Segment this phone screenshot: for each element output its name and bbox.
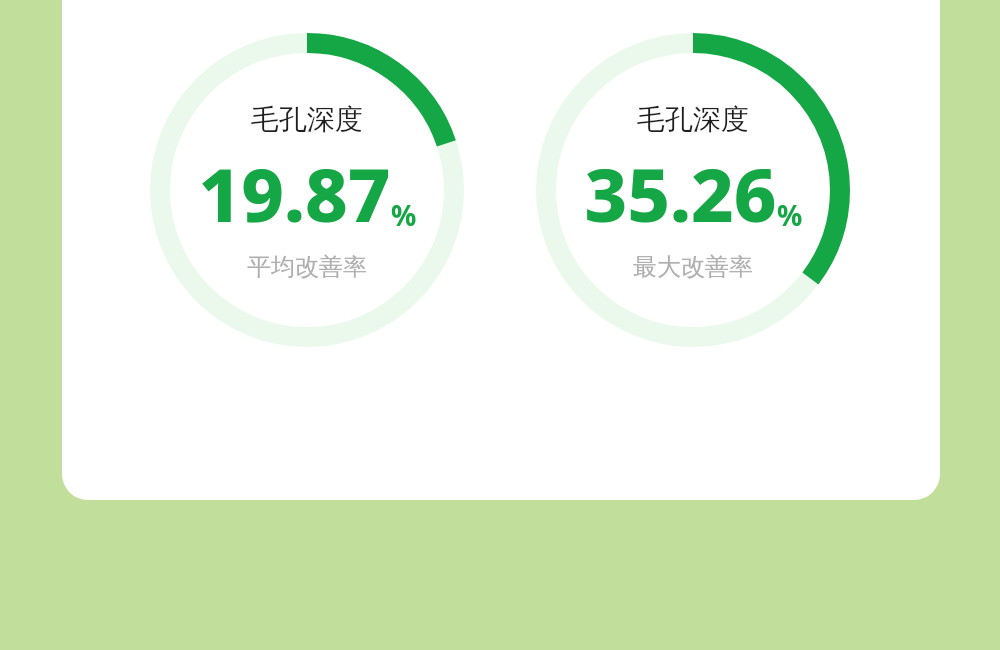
staticText: % [391, 196, 417, 234]
staticText: 35.26 [584, 143, 777, 244]
staticText: 毛孔深度 [251, 102, 363, 137]
button[interactable]: 毛孔深度 最大改善率 35.26% [536, 33, 850, 347]
button[interactable]: 毛孔深度 平均改善率 19.87% [150, 33, 464, 347]
staticText: % [777, 196, 803, 234]
staticText: 最大改善率 [633, 252, 753, 282]
staticText: 毛孔深度 [637, 102, 749, 137]
staticText: 19.87 [198, 143, 391, 244]
button[interactable] [62, 0, 940, 500]
staticText: 平均改善率 [247, 252, 367, 282]
